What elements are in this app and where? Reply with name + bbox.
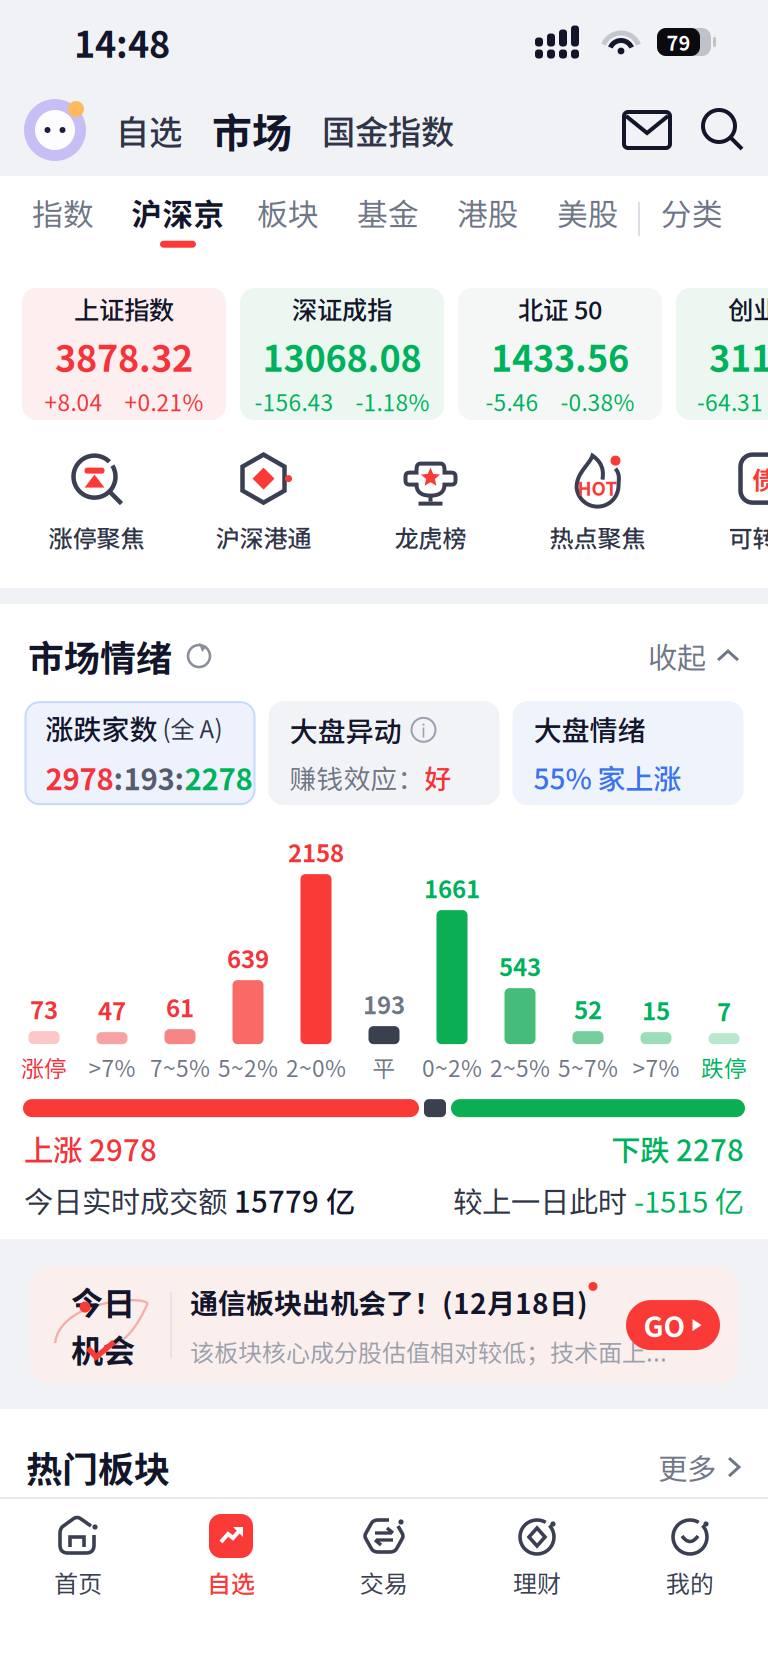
staticText: 债 xyxy=(752,460,768,497)
staticText: 更多 xyxy=(658,1446,716,1488)
staticText: 2158 xyxy=(288,834,344,869)
staticText: -1515 亿 xyxy=(634,1179,744,1221)
staticText: 赚钱效应： xyxy=(289,758,424,797)
staticText: -156.43 xyxy=(254,385,333,418)
staticText: 52 xyxy=(574,991,602,1026)
staticText: 7 xyxy=(717,993,731,1028)
staticText: -1.18% xyxy=(355,385,429,418)
staticText: 涨跌家数 xyxy=(45,708,157,748)
staticText: 14:48 xyxy=(74,16,170,68)
button[interactable]: 今日 xyxy=(30,1267,738,1383)
staticText: 2~0% xyxy=(286,1051,346,1083)
button[interactable]: 沪深港通 xyxy=(180,450,347,554)
staticText: >7% xyxy=(632,1051,679,1083)
staticText: +0.21% xyxy=(124,385,203,418)
staticText: 收起 xyxy=(648,635,706,677)
button[interactable]: 市场 xyxy=(212,101,292,159)
button[interactable]: HOT xyxy=(514,450,681,554)
staticText: 自选 xyxy=(116,106,182,154)
staticText: 73 xyxy=(30,991,58,1026)
staticText: 55% 家上涨 xyxy=(533,757,681,798)
button[interactable]: 收起 xyxy=(648,635,740,677)
staticText: >7% xyxy=(88,1051,135,1083)
staticText: 国金指数 xyxy=(322,106,454,154)
staticText: 港股 xyxy=(457,190,519,235)
button[interactable]: 我的 xyxy=(613,1513,766,1600)
button[interactable]: 北证 50 xyxy=(458,288,662,420)
staticText: HOT xyxy=(577,474,617,501)
staticText: 龙虎榜 xyxy=(394,520,466,554)
staticText: 跌停 xyxy=(701,1051,747,1083)
staticText: 今日 xyxy=(71,1278,135,1324)
button[interactable]: 创业板指 xyxy=(676,288,768,420)
staticText: 上证指数 xyxy=(74,290,174,327)
button[interactable]: 指数 xyxy=(8,190,118,248)
staticText: 61 xyxy=(166,989,194,1024)
staticText: 7~5% xyxy=(150,1051,210,1083)
button[interactable]: 债 xyxy=(681,450,768,554)
staticText: 板块 xyxy=(257,190,319,235)
button[interactable]: 涨停聚焦 xyxy=(13,450,180,554)
staticText: i xyxy=(421,717,426,742)
staticText: 美股 xyxy=(557,190,619,235)
button[interactable]: 上证指数 xyxy=(22,288,226,420)
staticText: 15 xyxy=(642,992,670,1027)
button[interactable]: 美股 xyxy=(538,190,638,248)
button[interactable]: Messages xyxy=(622,110,672,150)
staticText: 下跌 2278 xyxy=(611,1127,744,1170)
staticText: 北证 50 xyxy=(518,290,602,327)
staticText: 639 xyxy=(227,940,269,975)
button[interactable]: 分类 xyxy=(640,190,744,248)
staticText: 3878.32 xyxy=(55,330,193,382)
staticText: 涨停聚焦 xyxy=(48,520,144,554)
button[interactable]: 深证成指 xyxy=(240,288,444,420)
staticText: 分类 xyxy=(661,190,723,235)
staticText: :193: xyxy=(113,756,184,799)
button[interactable]: 龙虎榜 xyxy=(347,450,514,554)
button[interactable]: Search xyxy=(700,107,746,153)
staticText: 自选 xyxy=(207,1565,255,1600)
staticText: 1433.56 xyxy=(491,330,629,382)
staticText: 市场情绪 xyxy=(28,630,172,682)
staticText: -64.31 xyxy=(697,385,763,418)
staticText: 较上一日此时 xyxy=(453,1179,634,1221)
staticText: 1661 xyxy=(424,870,480,905)
staticText: +8.04 xyxy=(44,385,102,418)
staticText: 13068.08 xyxy=(262,330,421,382)
staticText: 机会 xyxy=(71,1326,135,1372)
staticText: 指数 xyxy=(32,190,94,235)
staticText: 可转债 xyxy=(728,520,768,554)
staticText: 市场 xyxy=(212,101,292,159)
button[interactable]: 自选 xyxy=(116,106,182,154)
staticText: 通信板块出机会了！(12月18日) xyxy=(190,1281,588,1322)
button[interactable]: 国金指数 xyxy=(322,106,454,154)
staticText: 基金 xyxy=(357,190,419,235)
staticText: 创业板指 xyxy=(728,290,768,327)
staticText: 15779 亿 xyxy=(234,1179,355,1221)
button[interactable]: 港股 xyxy=(438,190,538,248)
staticText: 热点聚焦 xyxy=(549,520,645,554)
button[interactable]: 理财 xyxy=(460,1513,613,1600)
staticText: 大盘情绪 xyxy=(533,709,645,749)
button[interactable]: 交易 xyxy=(307,1513,460,1600)
staticText: 上涨 2978 xyxy=(24,1127,157,1170)
staticText: 2~5% xyxy=(490,1051,550,1083)
staticText: 沪深港通 xyxy=(215,520,311,554)
button[interactable]: 沪深京 xyxy=(118,190,238,248)
staticText: 今日实时成交额 xyxy=(24,1179,234,1221)
staticText: 好 xyxy=(424,758,451,797)
button[interactable]: 更多 xyxy=(658,1446,742,1488)
staticText: 首页 xyxy=(54,1565,102,1600)
button[interactable]: 基金 xyxy=(338,190,438,248)
staticText: -5.46 xyxy=(485,385,538,418)
staticText: 47 xyxy=(98,992,126,1027)
button[interactable]: 自选 xyxy=(154,1513,307,1600)
button[interactable]: 首页 xyxy=(1,1513,154,1600)
staticText: 该板块核心成分股估值相对较低；技术面上... xyxy=(190,1334,667,1369)
staticText: 交易 xyxy=(360,1565,408,1600)
staticText: 沪深京 xyxy=(131,190,224,235)
staticText: -0.38% xyxy=(560,385,634,418)
button[interactable]: 板块 xyxy=(238,190,338,248)
staticText: 我的 xyxy=(666,1565,714,1600)
staticText: 2978 xyxy=(45,756,113,799)
